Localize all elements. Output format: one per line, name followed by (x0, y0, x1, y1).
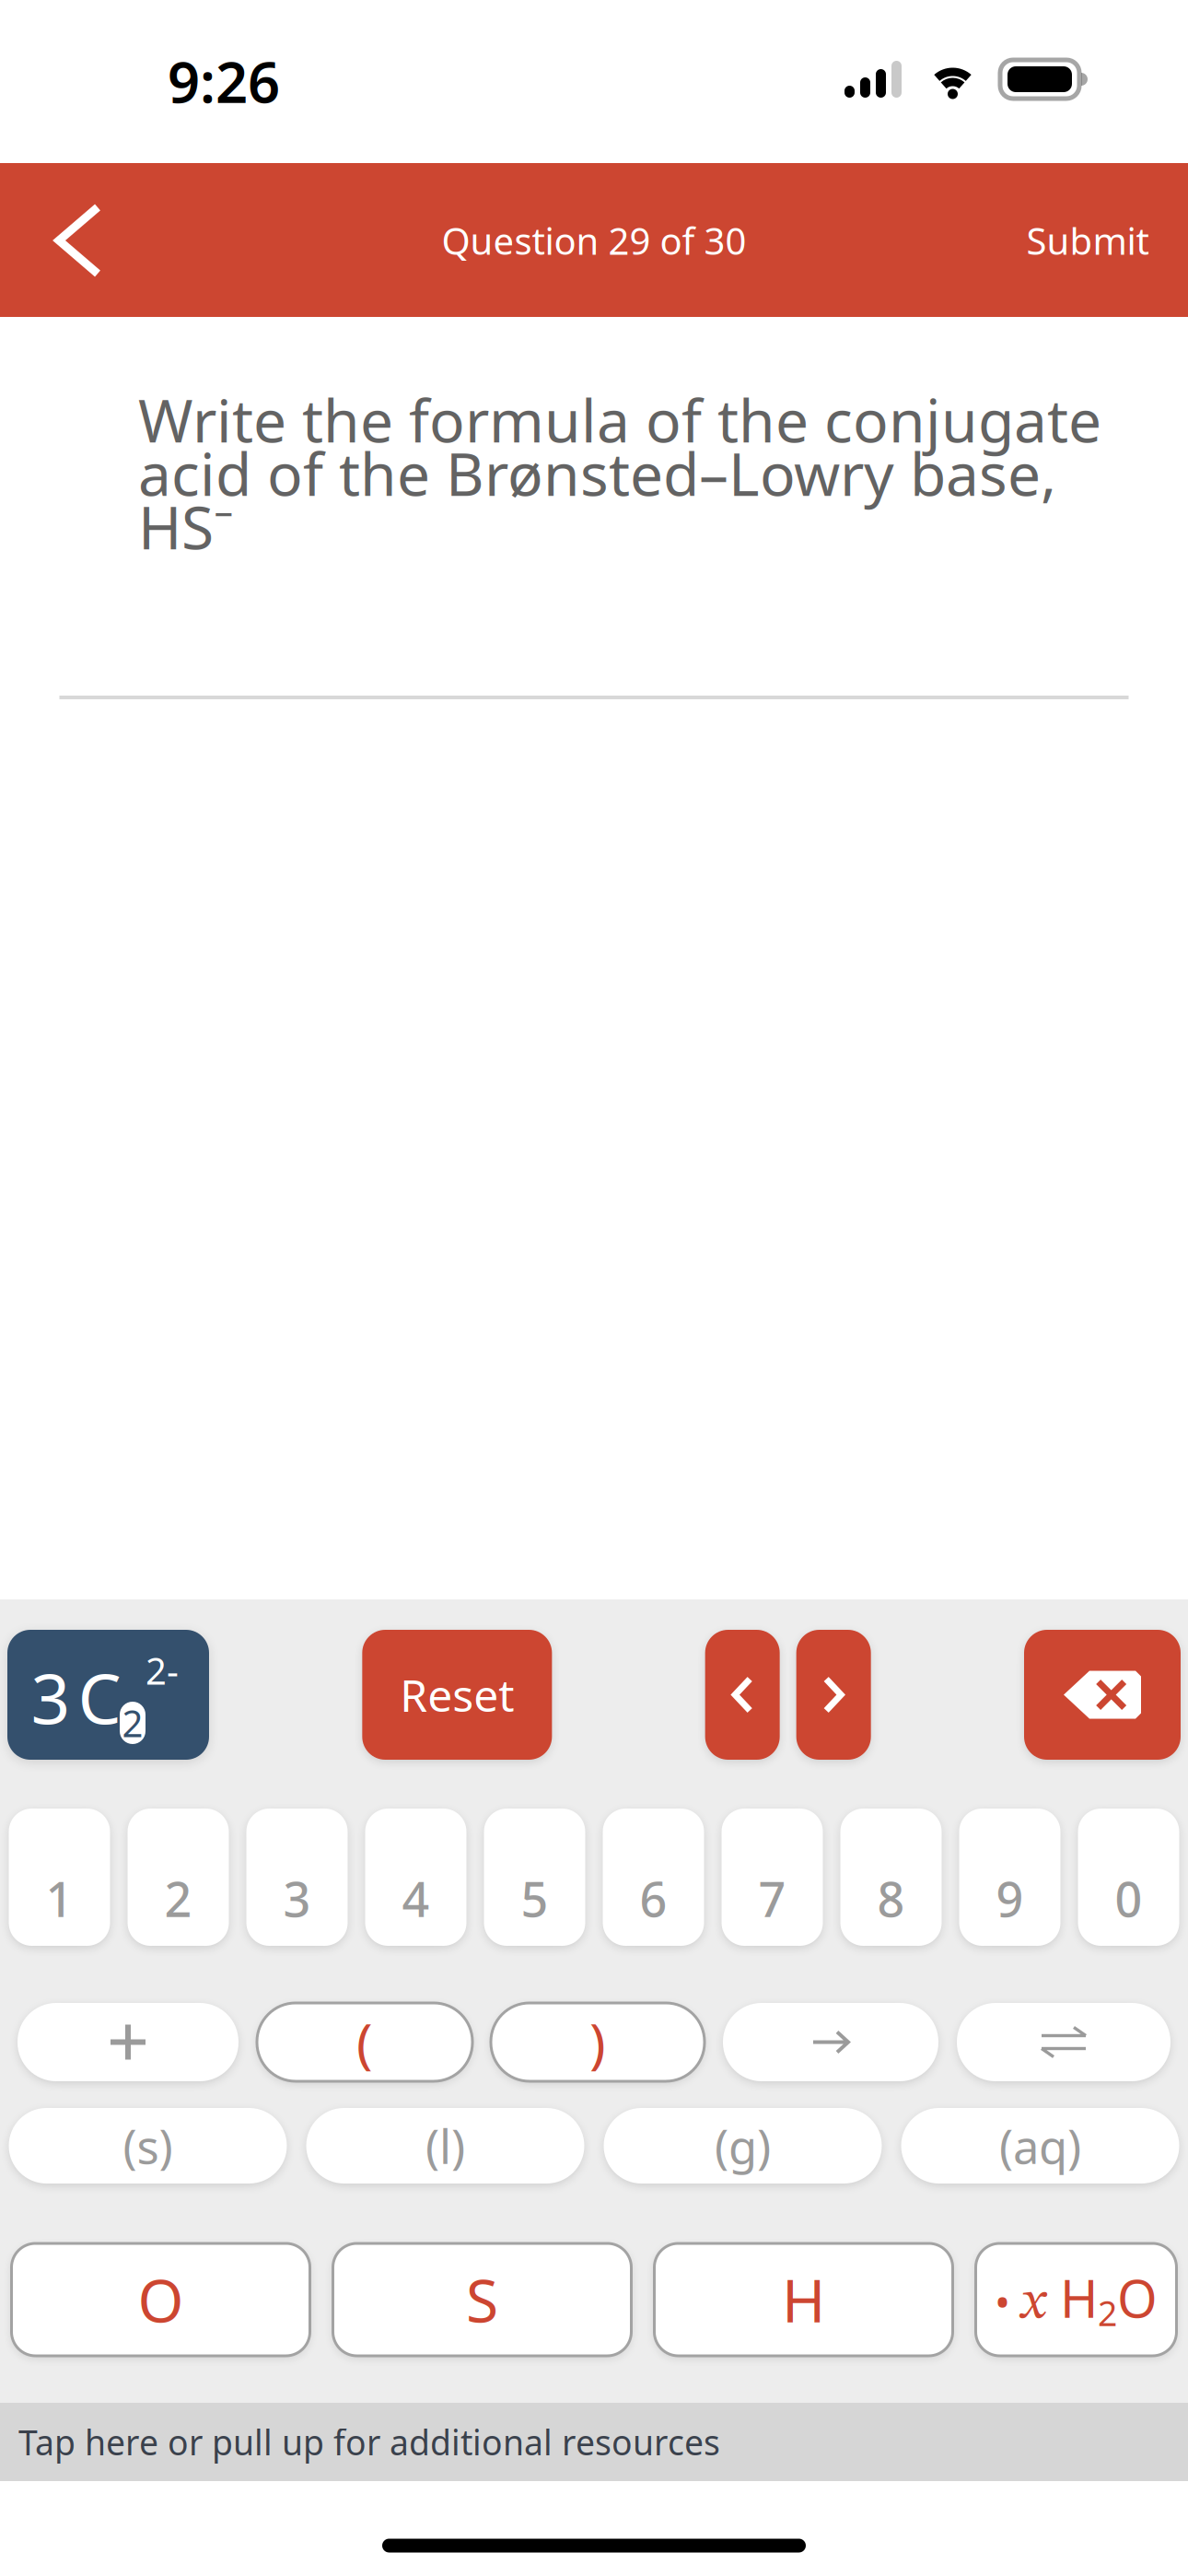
button[interactable]: Tap here or pull up for additional resou… (0, 2403, 1188, 2481)
button[interactable]: H (654, 2243, 953, 2356)
staticText: 3 (31, 1651, 70, 1743)
staticText: C (78, 1651, 121, 1743)
button[interactable]: Plus (17, 2003, 239, 2081)
staticText: H (782, 2260, 825, 2339)
staticText: 1 (46, 1867, 73, 1930)
staticText: (l) (425, 2115, 465, 2177)
button[interactable]: Submit (1000, 164, 1175, 317)
button[interactable]: Back (18, 164, 138, 317)
button[interactable]: Previous (705, 1630, 780, 1760)
staticText: O (138, 2260, 184, 2339)
button[interactable]: 5 (484, 1809, 585, 1946)
staticText: Reset (400, 1665, 514, 1724)
staticText: Question 29 of 30 (442, 216, 746, 265)
button[interactable]: Delete (1024, 1630, 1181, 1760)
button[interactable]: 4 (365, 1809, 466, 1946)
button[interactable]: Reset (362, 1630, 552, 1760)
button[interactable]: Equilibrium (957, 2003, 1171, 2081)
button[interactable]: 6 (603, 1809, 704, 1946)
button[interactable]: ) (491, 2003, 705, 2081)
staticText: (aq) (999, 2115, 1081, 2177)
staticText: 2- (146, 1646, 179, 1695)
button[interactable]: Next (796, 1630, 871, 1760)
staticText: (g) (715, 2115, 771, 2177)
staticText: Submit (1026, 216, 1149, 265)
button[interactable]: 1 (9, 1809, 110, 1946)
button[interactable]: 0 (1078, 1809, 1179, 1946)
staticText: ( (356, 2006, 373, 2078)
staticText: 8 (877, 1867, 905, 1930)
button[interactable]: 8 (840, 1809, 942, 1946)
staticText: (s) (123, 2115, 173, 2177)
staticText: 0 (1115, 1867, 1142, 1930)
staticText: 3 (283, 1867, 311, 1930)
button[interactable]: O (12, 2243, 310, 2356)
button[interactable]: 7 (722, 1809, 823, 1946)
button[interactable]: 3 (7, 1630, 209, 1760)
staticText: 6 (640, 1867, 667, 1930)
button[interactable]: (g) (604, 2108, 882, 2184)
staticText: S (466, 2260, 498, 2339)
staticText: 2 (164, 1867, 192, 1930)
button[interactable]: ( (257, 2003, 472, 2081)
button[interactable]: (aq) (901, 2108, 1179, 2184)
staticText: 9:26 (168, 44, 280, 119)
button[interactable]: (s) (9, 2108, 287, 2184)
button[interactable]: Yields (723, 2003, 938, 2081)
staticText: 9 (996, 1867, 1024, 1930)
staticText: ) (589, 2006, 606, 2078)
button[interactable]: • x H2O (976, 2243, 1176, 2356)
staticText: 7 (758, 1867, 786, 1930)
staticText: 2 (122, 1698, 143, 1747)
button[interactable]: S (333, 2243, 631, 2356)
staticText: 5 (521, 1867, 548, 1930)
button[interactable]: 2 (128, 1809, 229, 1946)
button[interactable]: 9 (959, 1809, 1060, 1946)
button[interactable]: 3 (246, 1809, 348, 1946)
staticText: Tap here or pull up for additional resou… (18, 2419, 720, 2465)
staticText: • x H2O (995, 2264, 1158, 2336)
button[interactable]: (l) (306, 2108, 584, 2184)
staticText: Write the formula of the conjugate acid … (138, 381, 1101, 566)
staticText: 4 (402, 1867, 430, 1930)
